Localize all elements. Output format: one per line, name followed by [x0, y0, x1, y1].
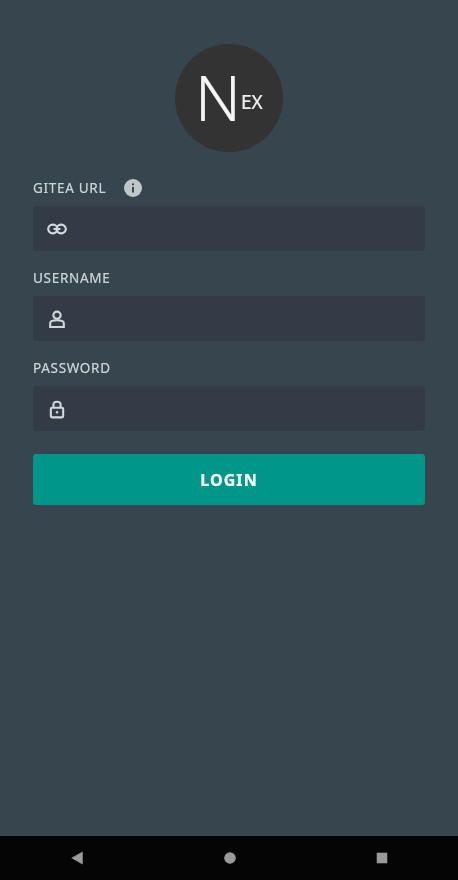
button[interactable]: Back: [0, 836, 153, 880]
button[interactable]: Recent apps: [306, 836, 458, 880]
staticText: USERNAME: [33, 269, 111, 287]
staticText: GITEA URL: [33, 179, 107, 197]
staticText: EX: [241, 89, 263, 115]
button[interactable]: Password: [33, 386, 425, 431]
staticText: LOGIN: [200, 469, 258, 491]
button[interactable]: LOGIN: [33, 454, 425, 505]
button[interactable]: Gitea URL: [33, 206, 425, 251]
button[interactable]: Home: [153, 836, 306, 880]
staticText: N: [195, 54, 241, 140]
staticText: PASSWORD: [33, 359, 111, 377]
button[interactable]: Information about Gitea URL: [124, 179, 142, 197]
button[interactable]: Username: [33, 296, 425, 341]
